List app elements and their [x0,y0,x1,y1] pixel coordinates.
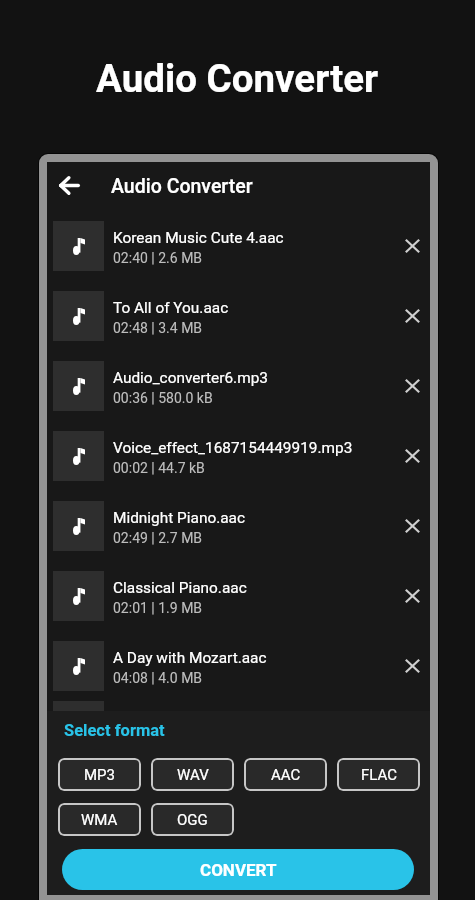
staticText: 02:01 | 1.9 MB [113,600,203,616]
button[interactable]: Remove [395,294,430,338]
staticText: CONVERT [200,860,277,880]
staticText: WAV [177,766,209,784]
button[interactable]: OGG [151,803,234,836]
button[interactable]: A Day with Mozart.aac [47,631,430,701]
staticText: To All of You.aac [113,299,229,317]
button[interactable]: Remove [395,574,430,618]
staticText: Classical Piano.aac [113,579,247,597]
button[interactable]: WAV [151,758,234,791]
button[interactable]: Classical Piano.aac [47,561,430,631]
button[interactable]: MP3 [58,758,141,791]
button[interactable]: AAC [244,758,327,791]
staticText: OGG [177,811,208,829]
staticText: 02:49 | 2.7 MB [113,530,203,546]
button[interactable]: Remove [395,224,430,268]
button[interactable]: FLAC [337,758,420,791]
button[interactable]: Remove [395,364,430,408]
button[interactable]: To All of You.aac [47,281,430,351]
staticText: WMA [81,811,118,829]
button[interactable]: Audio_converter6.mp3 [47,351,430,421]
staticText: 02:40 | 2.6 MB [113,250,203,266]
button[interactable]: Remove [395,434,430,478]
button[interactable]: WMA [58,803,141,836]
button[interactable]: Back [47,162,90,211]
staticText: Select format [64,721,165,740]
staticText: Audio Converter [111,175,253,198]
staticText: 04:08 | 4.0 MB [113,670,203,686]
staticText: Voice_effect_1687154449919.mp3 [113,439,353,457]
button[interactable]: Remove [395,644,430,688]
button[interactable]: CONVERT [62,849,414,890]
staticText: 00:36 | 580.0 kB [113,390,213,406]
staticText: Audio_converter6.mp3 [113,369,268,387]
staticText: MP3 [84,766,115,784]
staticText: AAC [271,766,301,784]
staticText: 02:48 | 3.4 MB [113,320,203,336]
staticText: 00:02 | 44.7 kB [113,460,205,476]
button[interactable]: Midnight Piano.aac [47,491,430,561]
staticText: Midnight Piano.aac [113,509,246,527]
button[interactable]: Korean Music Cute 4.aac [47,211,430,281]
staticText: Audio Converter [96,56,379,101]
staticText: A Day with Mozart.aac [113,649,267,667]
button[interactable]: Voice_effect_1687154449919.mp3 [47,421,430,491]
staticText: FLAC [361,766,397,784]
staticText: Korean Music Cute 4.aac [113,229,284,247]
button[interactable]: Remove [395,504,430,548]
